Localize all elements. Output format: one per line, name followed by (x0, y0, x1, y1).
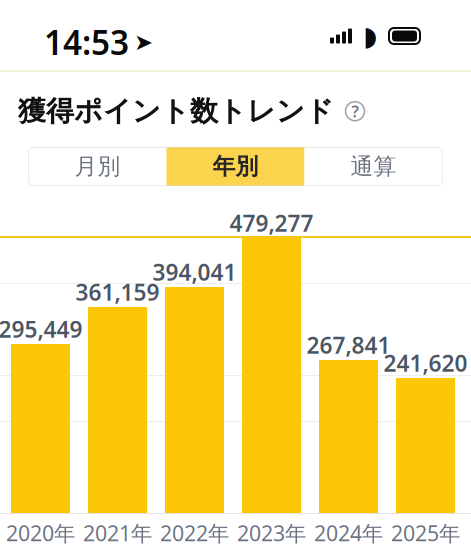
staticText: 通算 (350, 153, 396, 180)
staticText: 2022年 (160, 519, 229, 547)
staticText: ◗ (363, 21, 377, 51)
button[interactable]: 月別 (28, 147, 166, 186)
staticText: 2023年 (237, 519, 306, 547)
staticText: 2021年 (83, 519, 152, 547)
staticText: 2024年 (314, 519, 383, 547)
staticText: ? (351, 101, 358, 122)
staticText: 2020年 (6, 519, 75, 547)
staticText: 361,159 (75, 277, 159, 307)
staticText: 獲得ポイント数トレンド (18, 94, 334, 128)
staticText: 14:53 (44, 20, 129, 64)
staticText: 2025年 (391, 519, 460, 547)
staticText: ➤ (134, 29, 153, 55)
button[interactable]: 通算 (304, 147, 442, 186)
staticText: 267,841 (306, 330, 390, 360)
staticText: 295,449 (0, 314, 82, 344)
button[interactable]: 年別 (166, 147, 304, 186)
staticText: 479,277 (229, 208, 313, 238)
staticText: 年別 (212, 153, 258, 180)
staticText: 394,041 (152, 257, 236, 287)
staticText: 241,620 (383, 348, 467, 378)
button[interactable]: ヘルプ (344, 100, 366, 122)
staticText: 月別 (74, 153, 120, 180)
